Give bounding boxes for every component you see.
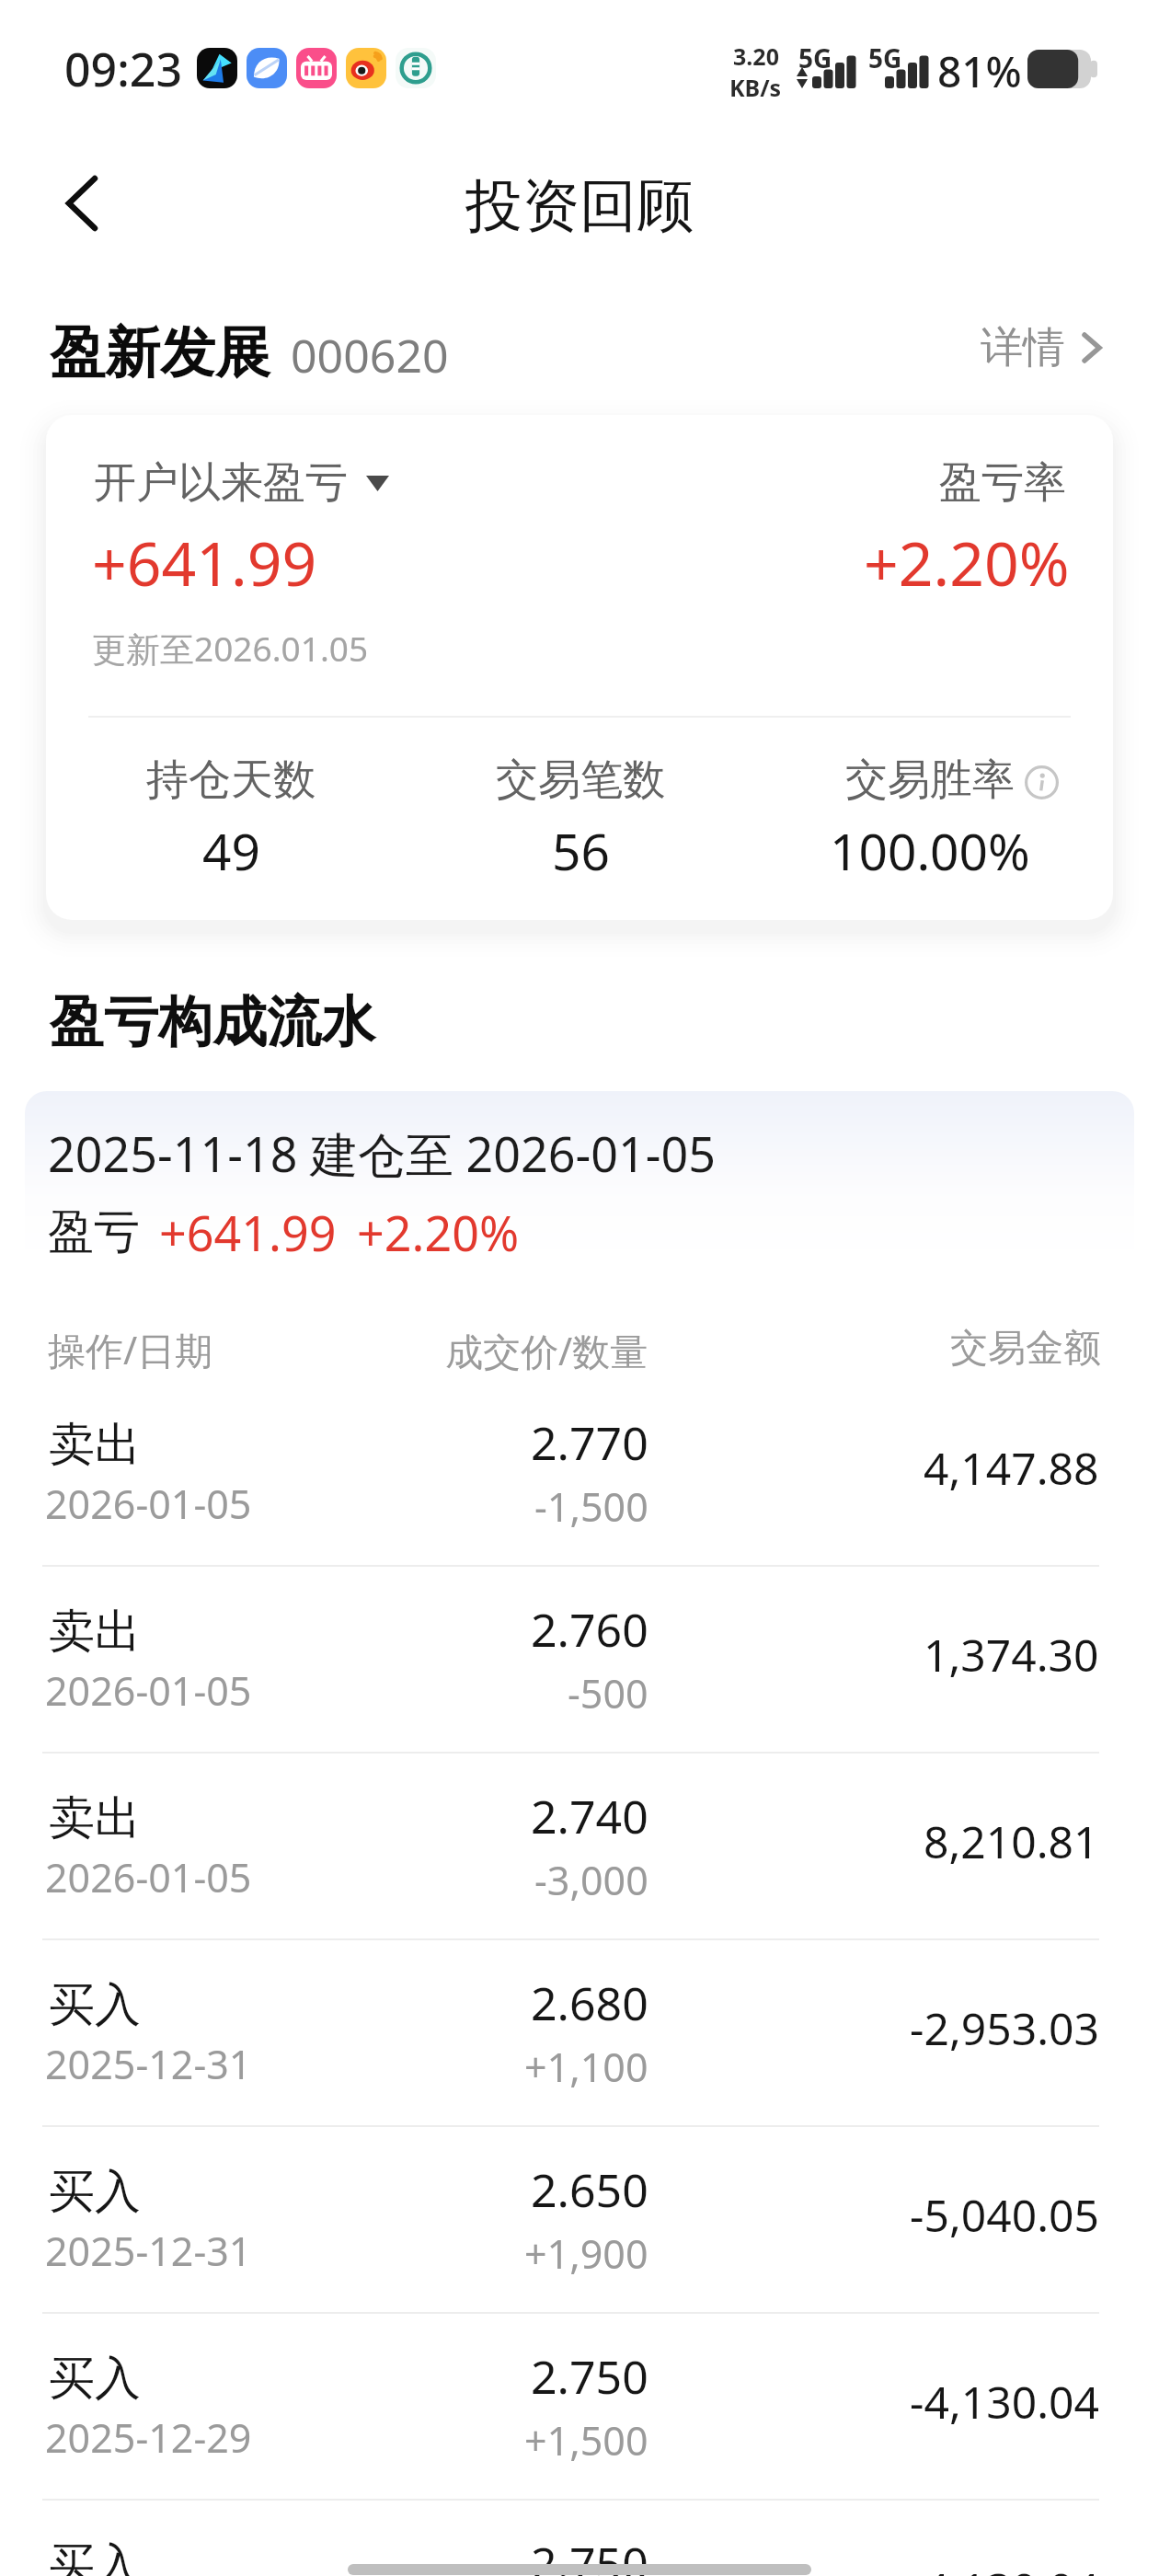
staticText: KB/s (729, 72, 782, 103)
button[interactable]: 卖出 (0, 1563, 1159, 1750)
staticText: +641.99 (159, 1200, 337, 1265)
staticText: 100.00% (830, 816, 1030, 885)
button[interactable]: 买入 (0, 2123, 1159, 2310)
staticText: 2.650 (531, 2158, 648, 2221)
staticText: 交易胜率 (845, 753, 1015, 807)
staticText: +2.20% (357, 1200, 520, 1265)
staticText: 卖出 (49, 1416, 141, 1474)
staticText: 2.740 (531, 1785, 648, 1847)
staticText: 持仓天数 (146, 753, 316, 807)
button[interactable]: 买入 (0, 2310, 1159, 2497)
staticText: 2.750 (531, 2532, 648, 2576)
button[interactable]: 买入 (0, 1937, 1159, 2123)
staticText: -5,040.05 (910, 2185, 1099, 2245)
staticText: 买入 (49, 2163, 141, 2221)
staticText: 成交价/数量 (445, 1325, 648, 1376)
staticText: 更新至2026.01.05 (92, 625, 369, 672)
staticText: 投资回顾 (465, 170, 694, 242)
staticText: 4,147.88 (924, 1438, 1099, 1498)
staticText: +2.20% (864, 521, 1070, 604)
staticText: 56 (552, 816, 610, 885)
staticText: 000620 (291, 324, 449, 386)
staticText: 2025-12-31 (45, 2037, 252, 2091)
staticText: 交易笔数 (496, 753, 665, 807)
staticText: +1,100 (524, 2040, 648, 2094)
staticText: +641.99 (92, 521, 317, 604)
staticText: 49 (202, 816, 260, 885)
staticText: 09:23 (64, 38, 182, 100)
staticText: 2025-11-18 建仓至 2026-01-05 (48, 1121, 716, 1186)
button[interactable]: 开户以来盈亏 (94, 456, 389, 510)
staticText: -500 (568, 1666, 648, 1720)
staticText: 2.770 (531, 1411, 648, 1474)
staticText: -2,953.03 (910, 1998, 1099, 2058)
staticText: 5G (798, 40, 832, 75)
staticText: -4,130.04 (910, 2372, 1099, 2432)
staticText: 8,210.81 (924, 1811, 1099, 1871)
staticText: -4,130.04 (910, 2559, 1099, 2576)
button[interactable]: 详情 (973, 314, 1109, 382)
staticText: 3.20 (733, 40, 779, 72)
staticText: 2.760 (531, 1598, 648, 1661)
staticText: 交易金额 (950, 1325, 1101, 1373)
staticText: 买入 (49, 1976, 141, 2034)
staticText: 卖出 (49, 1789, 141, 1847)
button[interactable]: Win rate info (1025, 765, 1059, 799)
staticText: -3,000 (534, 1853, 648, 1907)
staticText: 81% (937, 42, 1022, 100)
button[interactable]: 卖出 (0, 1750, 1159, 1937)
staticText: 1,374.30 (924, 1625, 1099, 1685)
staticText: 2025-12-29 (45, 2410, 252, 2465)
staticText: 2.680 (531, 1972, 648, 2034)
staticText: 开户以来盈亏 (94, 456, 348, 510)
staticText: 5G (868, 40, 902, 75)
staticText: 盈亏率 (939, 456, 1066, 510)
staticText: 盈亏构成流水 (50, 988, 375, 1056)
staticText: 2025-12-31 (45, 2224, 252, 2278)
button[interactable]: 买入 (0, 2497, 1159, 2576)
staticText: 盈亏 (48, 1203, 140, 1261)
staticText: 2.750 (531, 2345, 648, 2408)
button[interactable]: 卖出 (0, 1376, 1159, 1563)
staticText: +1,900 (524, 2226, 648, 2281)
staticText: 买入 (49, 2350, 141, 2408)
staticText: 买入 (49, 2536, 141, 2576)
staticText: 2026-01-05 (45, 1663, 252, 1718)
staticText: 2026-01-05 (45, 1850, 252, 1904)
staticText: +1,500 (524, 2413, 648, 2467)
staticText: 操作/日期 (48, 1324, 213, 1375)
staticText: 盈新发展 (50, 318, 270, 388)
staticText: 详情 (981, 321, 1065, 374)
staticText: 2026-01-05 (45, 1477, 252, 1531)
staticText: -1,500 (534, 1479, 648, 1534)
button[interactable]: Back (30, 152, 133, 255)
staticText: 卖出 (49, 1603, 141, 1661)
